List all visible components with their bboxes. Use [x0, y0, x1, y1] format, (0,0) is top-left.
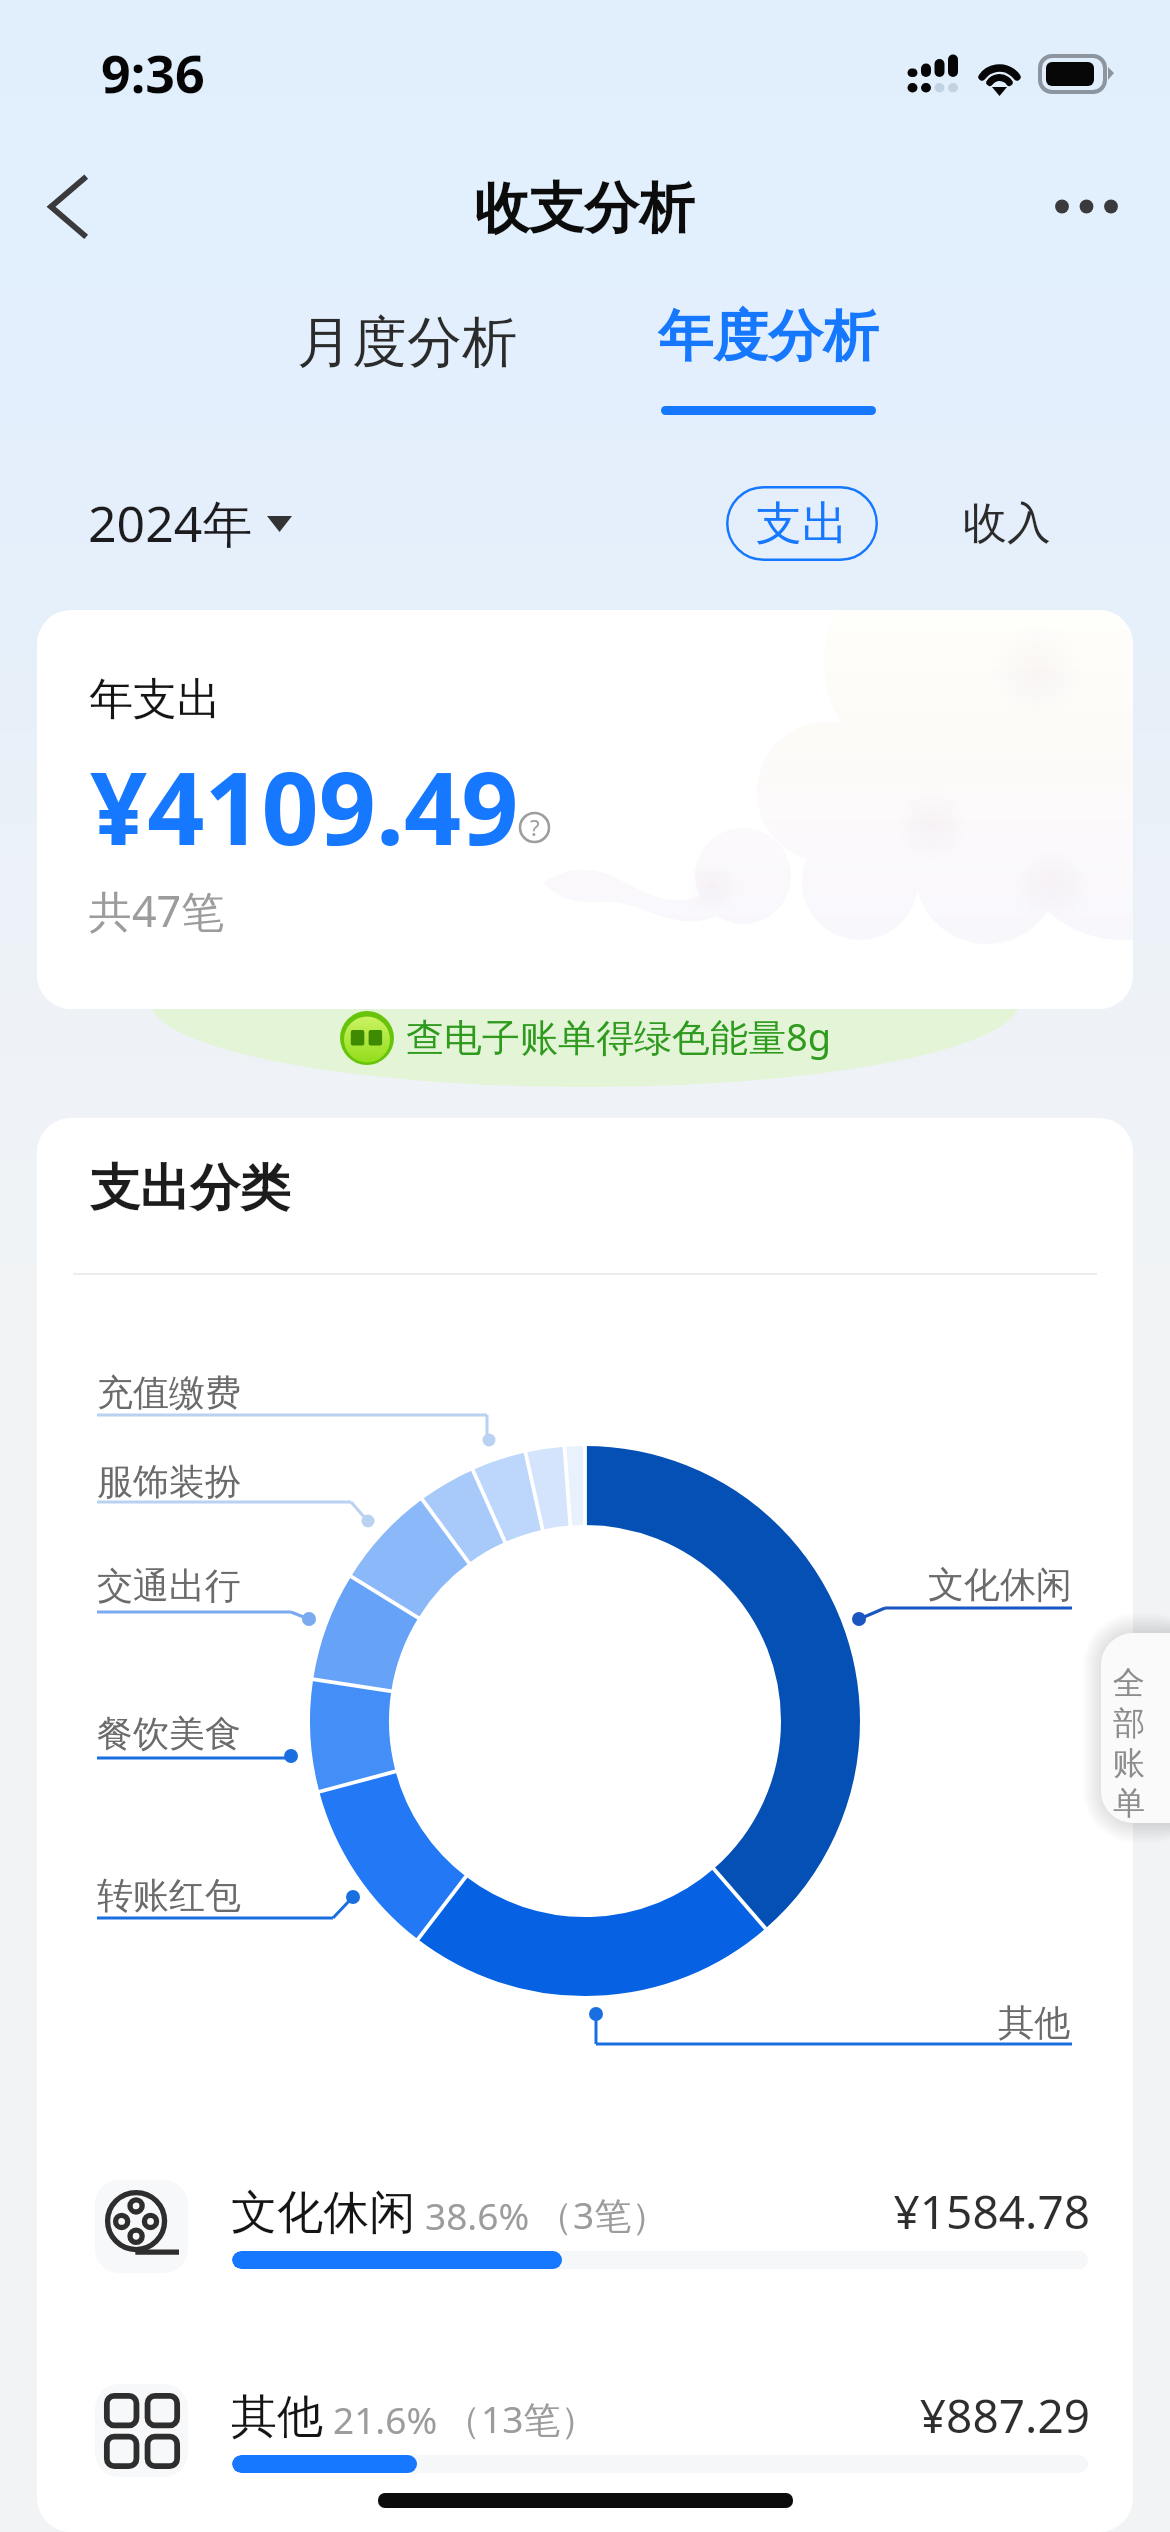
staticText: 21.6% — [333, 2394, 438, 2444]
staticText: 餐饮美食 — [97, 1711, 241, 1756]
button[interactable]: More options — [1032, 162, 1140, 252]
staticText: 支出分类 — [90, 1157, 290, 1220]
staticText: 查电子账单得绿色能量8g — [406, 1010, 832, 1062]
staticText: 单 — [1113, 1783, 1145, 1823]
staticText: 2024年 — [88, 489, 253, 557]
staticText: 服饰装扮 — [97, 1459, 241, 1504]
staticText: 文化休闲 — [928, 1562, 1072, 1607]
button[interactable]: 文化休闲 — [37, 2164, 1133, 2304]
staticText: ? — [530, 812, 540, 842]
staticText: ¥4109.49 — [90, 738, 519, 874]
staticText: 收入 — [963, 496, 1051, 551]
staticText: 收支分析 — [474, 174, 694, 243]
button[interactable]: What is this? — [516, 809, 553, 846]
staticText: 文化休闲 — [231, 2184, 415, 2242]
staticText: ¥1584.78 — [787, 2180, 1090, 2243]
button[interactable]: 月度分析 — [262, 291, 552, 393]
staticText: 9:36 — [101, 37, 205, 108]
button[interactable]: Back — [20, 160, 114, 254]
button[interactable]: 2024年 — [88, 487, 292, 559]
staticText: 部 — [1113, 1703, 1145, 1743]
staticText: 其他 — [998, 2000, 1070, 2045]
button[interactable]: 查电子账单得绿色能量8g — [338, 1008, 833, 1070]
staticText: 充值缴费 — [97, 1370, 241, 1415]
staticText: （3笔） — [536, 2189, 669, 2240]
staticText: 其他 — [231, 2388, 323, 2446]
staticText: 全 — [1113, 1663, 1145, 1703]
button[interactable]: 全 — [1101, 1633, 1170, 1823]
staticText: 转账红包 — [97, 1873, 241, 1918]
button[interactable]: 收入 — [934, 486, 1079, 561]
button[interactable]: 年度分析 — [623, 292, 913, 428]
staticText: 月度分析 — [297, 308, 517, 377]
button[interactable]: 年支出 — [37, 610, 1133, 1009]
staticText: 支出 — [756, 495, 848, 553]
staticText: 交通出行 — [97, 1563, 241, 1608]
staticText: ¥887.29 — [787, 2384, 1090, 2447]
staticText: 共47笔 — [89, 881, 225, 940]
staticText: 年支出 — [89, 672, 221, 727]
staticText: 38.6% — [425, 2190, 530, 2240]
staticText: （13笔） — [444, 2393, 598, 2444]
staticText: 年度分析 — [658, 302, 878, 371]
button[interactable]: 其他 — [37, 2368, 1133, 2508]
staticText: 账 — [1113, 1743, 1145, 1783]
button[interactable]: 支出 — [726, 486, 878, 561]
